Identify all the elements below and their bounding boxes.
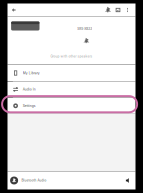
button[interactable]: My Library bbox=[7, 65, 135, 81]
button[interactable]: Group with other speakers bbox=[7, 53, 135, 60]
button[interactable]: Bluetooth Audio bbox=[7, 171, 135, 189]
button[interactable]: More options bbox=[123, 3, 132, 16]
staticText: SRS-XB33 bbox=[77, 27, 92, 31]
staticText: My Library bbox=[23, 71, 40, 75]
button[interactable]: Audio In bbox=[7, 81, 135, 97]
staticText: Audio In bbox=[23, 87, 36, 91]
button[interactable]: Back bbox=[7, 3, 20, 16]
staticText: Bluetooth Audio bbox=[21, 179, 46, 182]
staticText: Group with other speakers bbox=[50, 55, 92, 58]
button[interactable]: Screen mirroring bbox=[113, 3, 123, 16]
staticText: Settings bbox=[23, 104, 36, 108]
button[interactable]: Bluetooth bbox=[103, 3, 113, 16]
button[interactable]: Settings bbox=[7, 98, 135, 114]
